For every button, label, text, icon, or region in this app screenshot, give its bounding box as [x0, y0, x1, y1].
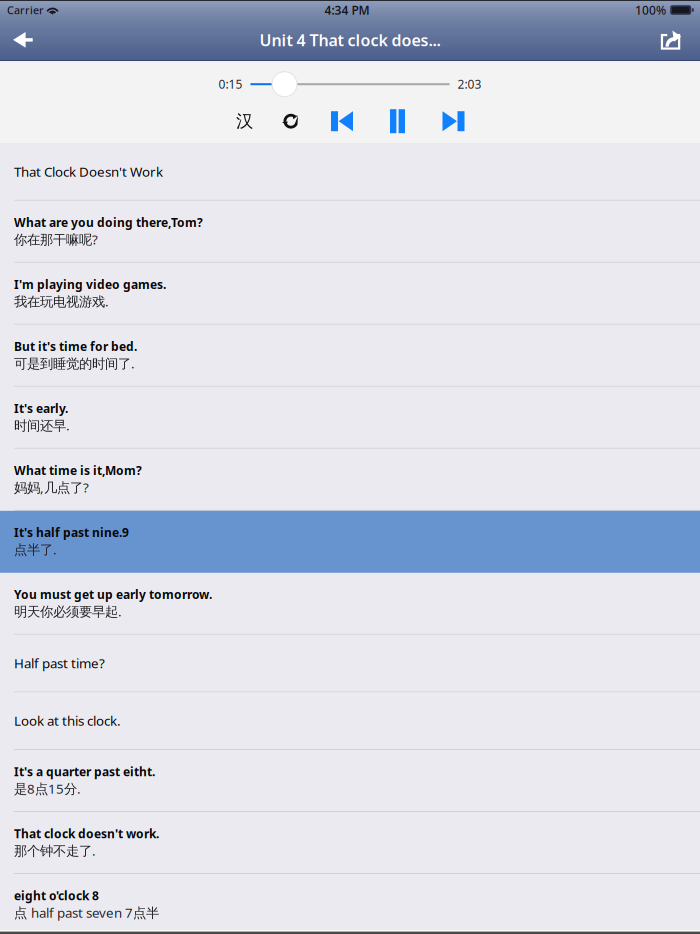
staticText: 汉 [236, 111, 253, 132]
button[interactable]: It's early. [0, 387, 700, 449]
button[interactable]: It's half past nine.9 [0, 511, 700, 573]
staticText: 点 half past seven 7点半 [14, 904, 159, 921]
staticText: It's early. [14, 400, 68, 416]
staticText: 时间还早. [14, 416, 70, 434]
staticText: You must get up early tomorrow. [14, 586, 212, 602]
button[interactable]: That clock doesn't work. [0, 812, 700, 874]
button[interactable]: You must get up early tomorrow. [0, 573, 700, 635]
staticText: eight o'clock 8 [14, 888, 99, 904]
button[interactable]: That Clock Doesn't Work [0, 143, 700, 201]
staticText: What time is it,Mom? [14, 462, 142, 478]
button[interactable]: Pause [369, 104, 426, 138]
button[interactable]: Back [0, 20, 46, 60]
staticText: I'm playing video games. [14, 276, 166, 292]
button[interactable]: Show Chinese [222, 104, 267, 138]
staticText: 可是到睡觉的时间了. [14, 354, 135, 372]
staticText: 2:03 [457, 76, 481, 92]
button[interactable]: Half past time? [0, 635, 700, 692]
staticText: Unit 4 That clock does... [259, 29, 440, 51]
staticText: 0:15 [218, 76, 242, 92]
staticText: What are you doing there,Tom? [14, 214, 203, 230]
button[interactable]: Previous [315, 104, 369, 138]
button[interactable]: eight o'clock 8 [0, 874, 700, 934]
staticText: 4:34 PM [324, 2, 369, 18]
button[interactable]: I'm playing video games. [0, 263, 700, 325]
button[interactable]: Look at this clock. [0, 692, 700, 750]
staticText: 100% [635, 2, 666, 18]
button[interactable]: What are you doing there,Tom? [0, 201, 700, 263]
staticText: 妈妈,几点了? [14, 478, 89, 496]
button[interactable]: Next [426, 104, 481, 138]
staticText: That Clock Doesn't Work [14, 163, 163, 180]
staticText: 那个钟不走了. [14, 842, 96, 859]
staticText: 我在玩电视游戏. [14, 292, 109, 310]
staticText: 你在那干嘛呢? [14, 230, 98, 248]
staticText: Carrier [7, 3, 44, 17]
staticText: 点半了. [14, 540, 57, 558]
button[interactable]: But it's time for bed. [0, 325, 700, 387]
staticText: But it's time for bed. [14, 338, 137, 354]
staticText: It's half past nine.9 [14, 524, 129, 540]
button[interactable]: What time is it,Mom? [0, 449, 700, 511]
staticText: 明天你必须要早起. [14, 602, 122, 620]
button[interactable]: It's a quarter past eitht. [0, 750, 700, 812]
button[interactable]: Share [642, 20, 700, 60]
staticText: 是8点15分. [14, 780, 81, 797]
staticText: It's a quarter past eitht. [14, 764, 155, 780]
button[interactable]: Repeat [267, 104, 315, 138]
staticText: That clock doesn't work. [14, 826, 159, 842]
staticText: Half past time? [14, 654, 105, 672]
staticText: Look at this clock. [14, 712, 121, 729]
